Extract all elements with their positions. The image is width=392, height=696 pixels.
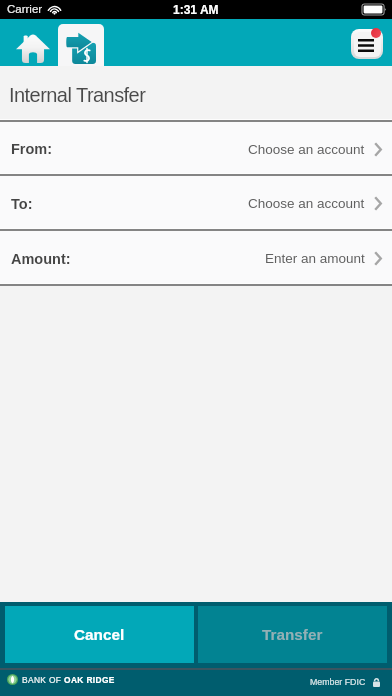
staticText: To: xyxy=(11,196,33,212)
staticText: BANK OF xyxy=(22,675,64,684)
staticText: Enter an amount xyxy=(265,251,365,266)
staticText: Internal Transfer xyxy=(9,84,146,106)
staticText: Amount: xyxy=(11,251,71,267)
staticText: Choose an account xyxy=(248,196,365,211)
staticText: Transfer xyxy=(262,626,323,643)
button[interactable]: Menu xyxy=(348,26,384,60)
staticText: OAK RIDGE xyxy=(64,675,115,684)
button[interactable]: Cancel xyxy=(5,606,194,663)
button[interactable]: Amount: xyxy=(0,231,392,286)
staticText: Carrier xyxy=(7,3,43,16)
staticText: Cancel xyxy=(74,626,125,643)
staticText: 1:31 AM xyxy=(173,3,219,16)
button[interactable]: To: xyxy=(0,176,392,231)
staticText: Choose an account xyxy=(248,142,365,157)
button[interactable]: Home xyxy=(0,19,58,66)
button[interactable]: Transfer xyxy=(58,24,104,66)
staticText: From: xyxy=(11,141,53,157)
staticText: Member FDIC xyxy=(310,677,366,687)
button[interactable]: From: xyxy=(0,122,392,176)
button[interactable]: Transfer xyxy=(198,606,387,663)
